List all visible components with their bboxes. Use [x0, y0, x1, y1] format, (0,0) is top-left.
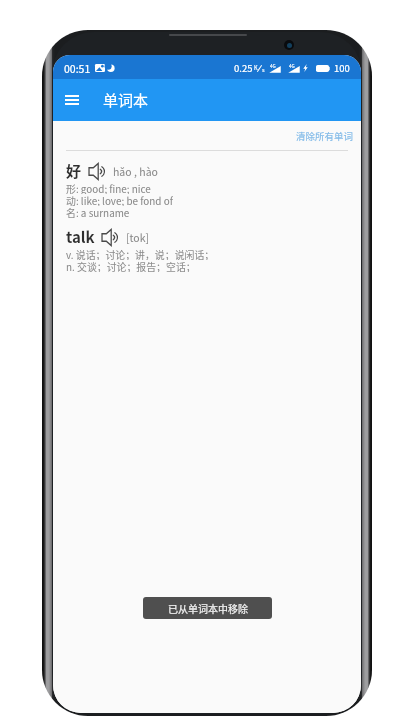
- button[interactable]: 好: [53, 160, 361, 220]
- staticText: 好: [66, 160, 82, 182]
- staticText: K: [254, 64, 258, 72]
- staticText: 动: like; love; be fond of: [66, 194, 173, 206]
- staticText: n. 交谈；讨论；报告；空话；: [66, 260, 196, 272]
- staticText: 单词本: [103, 89, 149, 111]
- staticText: 4G: [270, 63, 276, 70]
- staticText: 0.25: [234, 61, 253, 75]
- button[interactable]: Open navigation menu: [55, 83, 89, 117]
- button[interactable]: Play pronunciation: [88, 163, 105, 180]
- staticText: s: [262, 66, 265, 74]
- staticText: [tok]: [126, 230, 150, 245]
- staticText: 形: good; fine; nice: [66, 182, 151, 194]
- staticText: 清除所有单词: [296, 129, 354, 143]
- staticText: 名: a surname: [66, 206, 130, 218]
- button[interactable]: 清除所有单词: [289, 125, 361, 147]
- staticText: 4G: [289, 63, 295, 70]
- button[interactable]: 已从单词本中移除: [143, 597, 272, 619]
- button[interactable]: Play pronunciation: [101, 229, 118, 246]
- staticText: 100: [334, 61, 350, 75]
- staticText: v. 说话；讨论；讲，说；说闲话；: [66, 248, 215, 260]
- staticText: 00:51: [64, 61, 91, 76]
- staticText: hǎo , hào: [113, 164, 158, 179]
- staticText: talk: [66, 226, 95, 248]
- button[interactable]: talk: [53, 226, 361, 274]
- staticText: 已从单词本中移除: [168, 601, 248, 615]
